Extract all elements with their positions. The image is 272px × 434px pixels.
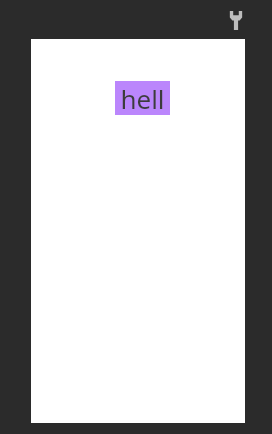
staticText: hello <box>115 81 170 115</box>
button[interactable]: hello <box>115 81 170 115</box>
button[interactable]: Build / Settings <box>227 10 245 31</box>
